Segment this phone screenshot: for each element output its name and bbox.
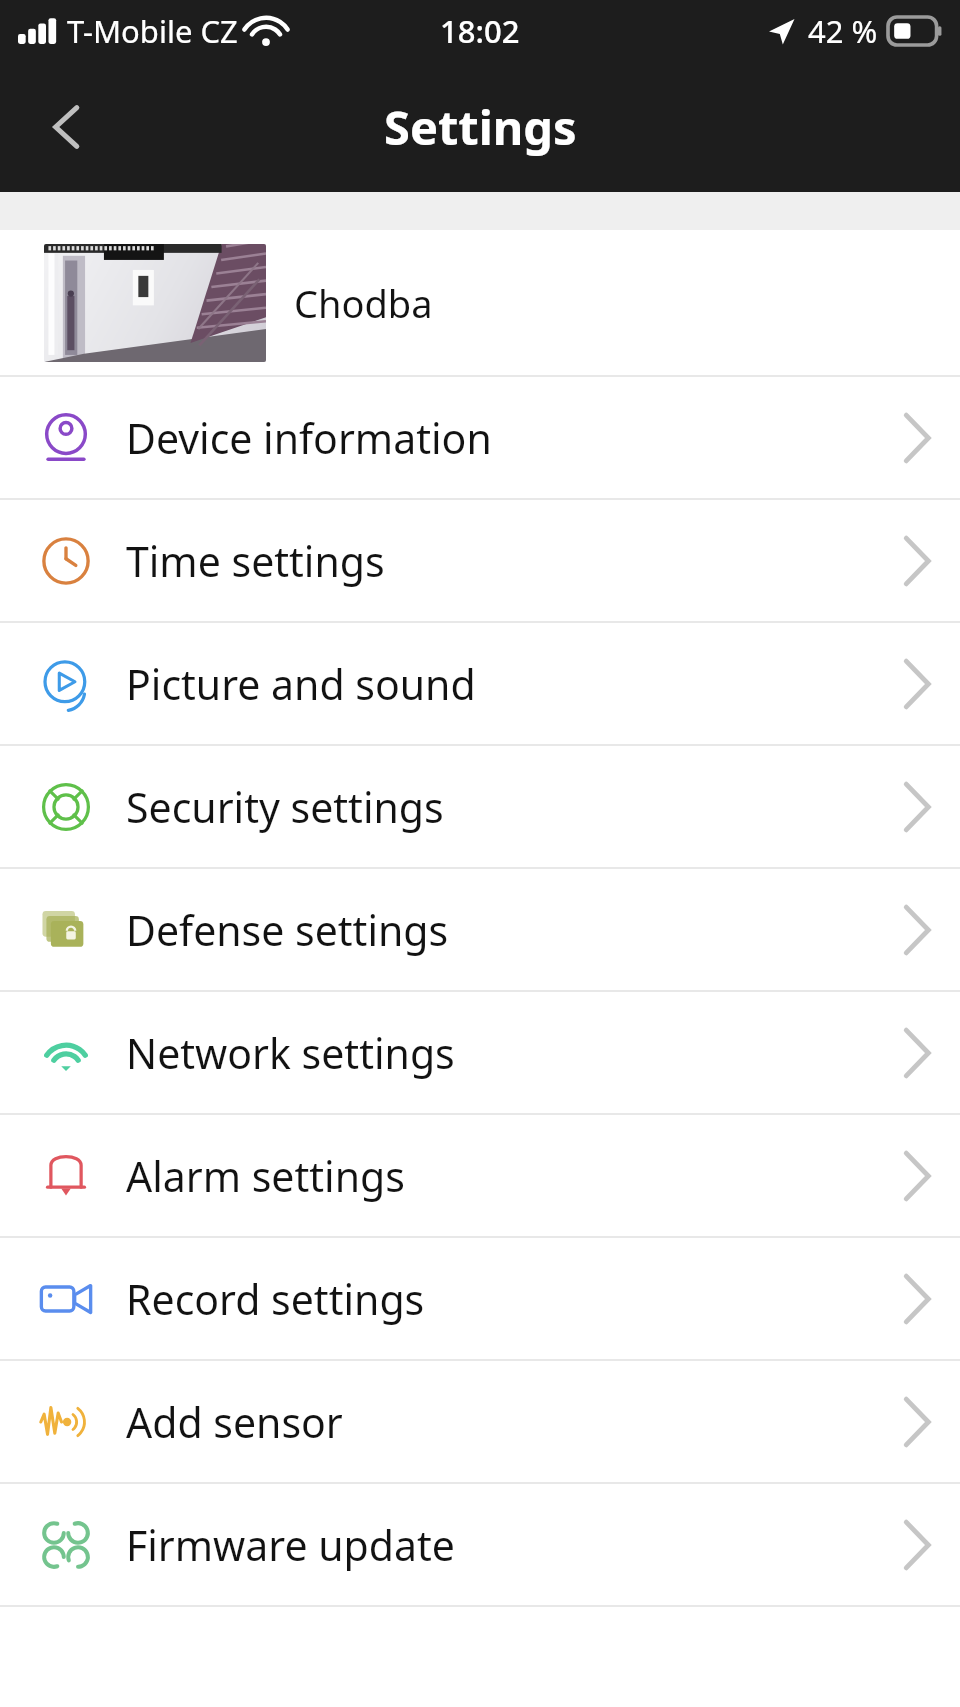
staticText: Alarm settings — [126, 1148, 405, 1204]
staticText: Security settings — [126, 779, 444, 835]
button[interactable]: Chodba — [0, 230, 960, 375]
button[interactable]: Back — [22, 81, 114, 173]
button[interactable]: Add sensor — [0, 1361, 960, 1482]
button[interactable]: Picture and sound — [0, 623, 960, 744]
button[interactable]: Alarm settings — [0, 1115, 960, 1236]
button[interactable]: Device information — [0, 377, 960, 498]
button[interactable]: Firmware update — [0, 1484, 960, 1605]
staticText: Firmware update — [126, 1517, 455, 1573]
staticText: 18:02 — [440, 10, 520, 52]
staticText: Device information — [126, 410, 492, 466]
staticText: 42 % — [808, 10, 878, 52]
staticText: Picture and sound — [126, 656, 476, 712]
staticText: Chodba — [294, 277, 433, 329]
button[interactable]: Time settings — [0, 500, 960, 621]
staticText: Add sensor — [126, 1394, 343, 1450]
button[interactable]: Record settings — [0, 1238, 960, 1359]
staticText: Record settings — [126, 1271, 425, 1327]
staticText: Settings — [384, 95, 577, 159]
staticText: T-Mobile CZ — [67, 10, 238, 52]
staticText: Defense settings — [126, 902, 449, 958]
staticText: Network settings — [126, 1025, 455, 1081]
button[interactable]: Defense settings — [0, 869, 960, 990]
button[interactable]: Network settings — [0, 992, 960, 1113]
button[interactable]: Security settings — [0, 746, 960, 867]
staticText: Time settings — [126, 533, 385, 589]
